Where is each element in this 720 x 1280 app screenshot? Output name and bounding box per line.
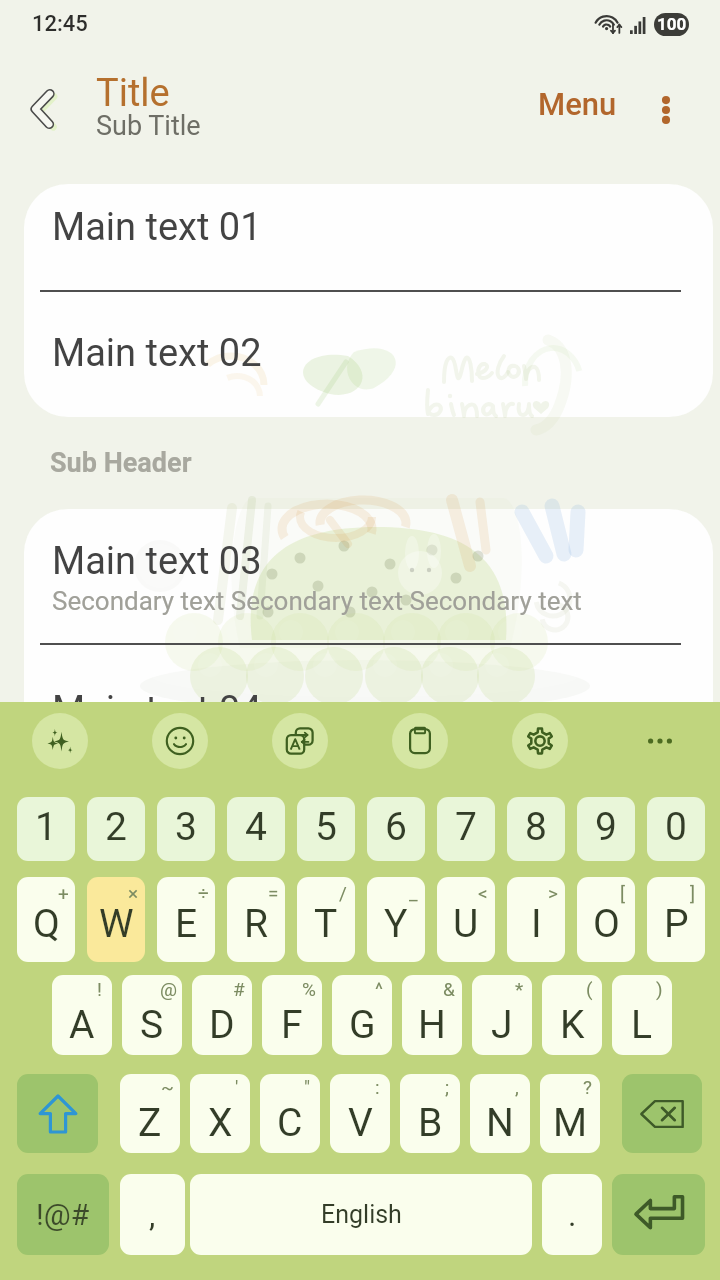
staticText: T	[314, 901, 338, 947]
button[interactable]: =	[227, 877, 285, 962]
staticText: 8	[525, 804, 547, 850]
button[interactable]: .	[542, 1174, 602, 1255]
button[interactable]: "	[260, 1074, 320, 1153]
button[interactable]: Backspace	[622, 1074, 702, 1153]
staticText: Sub Title	[96, 110, 201, 142]
staticText: ,	[515, 1076, 519, 1098]
button[interactable]: 7	[437, 797, 495, 861]
button[interactable]: /	[297, 877, 355, 962]
button[interactable]: Main text 03	[24, 509, 713, 639]
button[interactable]: ,	[470, 1074, 530, 1153]
button[interactable]: ~	[120, 1074, 180, 1153]
staticText: D	[209, 1002, 235, 1048]
staticText: +	[58, 882, 69, 904]
staticText: @	[160, 978, 178, 1000]
button[interactable]: '	[190, 1074, 250, 1153]
button[interactable]: 5	[297, 797, 355, 861]
staticText: Q	[33, 901, 60, 947]
button[interactable]: 1	[17, 797, 75, 861]
button[interactable]: Magic	[0, 702, 120, 780]
button[interactable]: (	[542, 975, 602, 1055]
staticText: %	[302, 978, 316, 1000]
staticText: (	[586, 978, 593, 1000]
button[interactable]: Emoji	[120, 702, 240, 780]
staticText: !	[97, 978, 102, 1000]
button[interactable]: ;	[400, 1074, 460, 1153]
staticText: _	[409, 882, 418, 904]
staticText: N	[486, 1100, 514, 1146]
button[interactable]: Clipboard	[360, 702, 480, 780]
button[interactable]: &	[402, 975, 462, 1055]
staticText: /	[339, 882, 347, 904]
staticText: ~	[161, 1076, 174, 1098]
staticText: Menu	[538, 86, 617, 122]
staticText: A	[69, 1002, 95, 1048]
staticText: 100	[657, 14, 687, 34]
staticText: Z	[138, 1100, 162, 1146]
staticText: Main text 03	[52, 539, 262, 584]
staticText: Main text 02	[52, 331, 262, 376]
button[interactable]: #	[192, 975, 252, 1055]
staticText: *	[515, 978, 524, 1000]
button[interactable]: )	[612, 975, 672, 1055]
button[interactable]: ÷	[157, 877, 215, 962]
button[interactable]: >	[507, 877, 565, 962]
button[interactable]: !	[52, 975, 112, 1055]
button[interactable]: More options	[640, 84, 692, 136]
button[interactable]: ×	[87, 877, 145, 962]
staticText: "	[304, 1076, 311, 1098]
button[interactable]: Menu	[526, 74, 629, 134]
button[interactable]: @	[122, 975, 182, 1055]
button[interactable]: ]	[647, 877, 705, 962]
staticText: K	[560, 1002, 585, 1048]
staticText: Main text 01	[52, 205, 262, 250]
staticText: ;	[445, 1076, 450, 1098]
button[interactable]: Main text 04	[24, 645, 713, 755]
button[interactable]: 3	[157, 797, 215, 861]
button[interactable]: ^	[332, 975, 392, 1055]
staticText: <	[478, 882, 488, 904]
button[interactable]: More	[600, 702, 720, 780]
staticText: F	[281, 1002, 303, 1048]
button[interactable]: ,	[120, 1174, 185, 1255]
button[interactable]: ?	[540, 1074, 600, 1153]
staticText: Y	[384, 901, 408, 947]
staticText: B	[418, 1100, 443, 1146]
button[interactable]: Translate	[240, 702, 360, 780]
staticText: Title	[96, 71, 170, 116]
button[interactable]: +	[17, 877, 75, 962]
staticText: 12:45	[32, 11, 88, 37]
staticText: C	[277, 1100, 303, 1146]
staticText: W	[99, 901, 134, 947]
button[interactable]: :	[330, 1074, 390, 1153]
button[interactable]: Main text 01	[24, 184, 713, 291]
button[interactable]: 8	[507, 797, 565, 861]
staticText: V	[348, 1100, 373, 1146]
button[interactable]: 6	[367, 797, 425, 861]
button[interactable]: _	[367, 877, 425, 962]
button[interactable]: %	[262, 975, 322, 1055]
button[interactable]: *	[472, 975, 532, 1055]
button[interactable]: 9	[577, 797, 635, 861]
button[interactable]: 0	[647, 797, 705, 861]
button[interactable]: Shift	[17, 1074, 98, 1153]
staticText: 6	[385, 804, 407, 850]
button[interactable]: Back	[13, 80, 71, 138]
button[interactable]: !@#	[17, 1174, 109, 1255]
button[interactable]: Settings	[480, 702, 600, 780]
staticText: =	[268, 882, 279, 904]
button[interactable]: [	[577, 877, 635, 962]
staticText: #	[233, 978, 245, 1000]
button[interactable]: Enter	[612, 1174, 705, 1255]
staticText: 7	[455, 804, 477, 850]
staticText: M	[553, 1100, 588, 1146]
staticText: Main text 04	[52, 688, 262, 733]
button[interactable]: English	[190, 1174, 532, 1255]
button[interactable]: 4	[227, 797, 285, 861]
staticText: O	[593, 901, 620, 947]
staticText: H	[418, 1002, 446, 1048]
button[interactable]: 2	[87, 797, 145, 861]
button[interactable]: Main text 02	[24, 292, 713, 417]
staticText: 3	[175, 804, 197, 850]
button[interactable]: <	[437, 877, 495, 962]
